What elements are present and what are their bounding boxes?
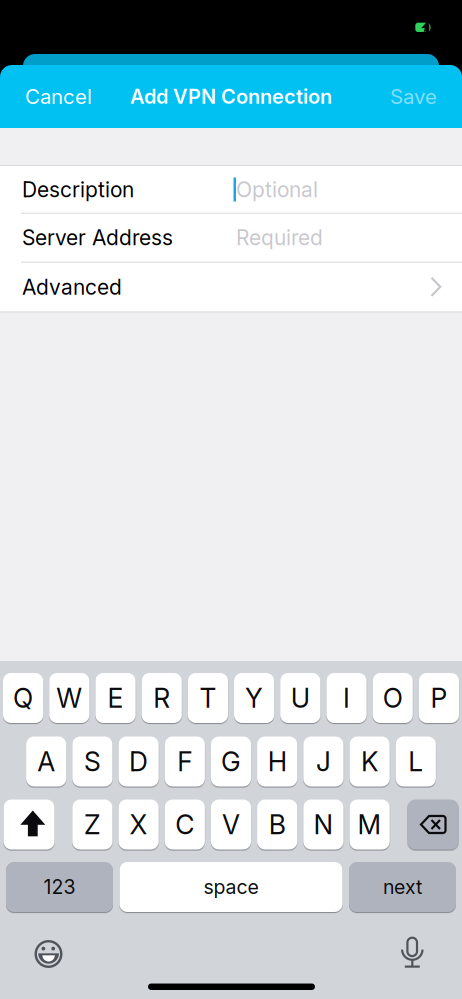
staticText: H [268, 745, 287, 778]
staticText: F [177, 745, 192, 778]
button[interactable]: C [165, 799, 205, 849]
staticText: X [130, 808, 148, 841]
staticText: O [383, 682, 403, 714]
button[interactable]: Q [3, 673, 43, 723]
staticText: A [37, 745, 55, 778]
button[interactable]: B [257, 799, 297, 849]
button[interactable]: Advanced [0, 262, 462, 999]
staticText: 123 [43, 875, 75, 899]
button[interactable]: Z [72, 799, 112, 849]
button[interactable]: next [349, 862, 456, 912]
staticText: Server Address [22, 225, 173, 250]
button[interactable]: Description [0, 166, 462, 213]
staticText: S [84, 745, 101, 778]
staticText: Cancel [25, 84, 92, 109]
button[interactable]: L [396, 736, 436, 786]
button[interactable]: U [280, 673, 320, 723]
staticText: Add VPN Connection [130, 84, 332, 109]
staticText: M [358, 808, 382, 841]
staticText: C [175, 808, 194, 841]
button[interactable]: P [419, 673, 459, 723]
staticText: N [313, 808, 333, 841]
staticText: B [269, 808, 286, 841]
staticText: I [343, 682, 350, 714]
staticText: Y [245, 682, 263, 714]
button[interactable]: Server Address [0, 213, 462, 261]
button[interactable]: S [72, 736, 112, 786]
staticText: Save [390, 84, 437, 109]
staticText: Z [84, 808, 101, 841]
staticText: Q [13, 682, 33, 714]
button[interactable]: space [119, 862, 342, 912]
button[interactable]: G [211, 736, 251, 786]
button[interactable]: T [188, 673, 228, 723]
button[interactable]: Save [317, 65, 437, 128]
button[interactable]: Delete [407, 799, 458, 849]
button[interactable]: N [303, 799, 343, 849]
staticText: U [291, 682, 310, 714]
staticText: Description [22, 177, 134, 202]
staticText: L [408, 745, 423, 778]
staticText: Optional [236, 177, 318, 202]
button[interactable]: Dictation [388, 928, 438, 978]
staticText: W [56, 682, 82, 714]
button[interactable]: F [165, 736, 205, 786]
button[interactable]: Emoji [24, 929, 74, 979]
staticText: D [129, 745, 148, 778]
button[interactable]: O [373, 673, 413, 723]
button[interactable]: D [118, 736, 159, 786]
button[interactable]: Shift [3, 799, 462, 999]
button[interactable]: M [349, 799, 390, 849]
staticText: next [383, 875, 422, 899]
button[interactable]: R [142, 673, 182, 723]
button[interactable]: E [95, 673, 136, 723]
staticText: P [430, 682, 447, 714]
button[interactable]: J [303, 736, 343, 786]
staticText: J [316, 745, 331, 778]
button[interactable]: 123 [6, 862, 113, 912]
staticText: R [153, 682, 170, 714]
button[interactable]: W [49, 673, 89, 723]
staticText: Advanced [22, 274, 122, 300]
button[interactable]: Y [234, 673, 274, 723]
staticText: G [221, 745, 241, 778]
button[interactable]: X [118, 799, 159, 849]
staticText: T [199, 682, 216, 714]
staticText: V [222, 808, 240, 841]
button[interactable]: I [326, 673, 367, 723]
staticText: space [203, 875, 258, 899]
staticText: E [107, 682, 123, 714]
button[interactable]: V [211, 799, 251, 849]
staticText: K [361, 745, 378, 778]
button[interactable]: K [349, 736, 390, 786]
button[interactable]: Cancel [25, 65, 145, 128]
staticText: Required [236, 225, 323, 250]
button[interactable]: A [26, 736, 66, 786]
button[interactable]: H [257, 736, 297, 786]
